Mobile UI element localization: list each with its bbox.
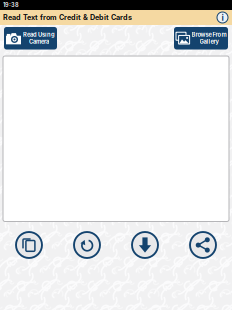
button[interactable]: Browse From [174,27,228,49]
staticText: Read Text from Credit & Debit Cards [3,13,132,22]
staticText: i [221,12,223,23]
staticText: 19:38 [3,2,19,8]
staticText: Camera [29,38,49,45]
button[interactable]: Share [184,229,222,261]
button[interactable]: Reset [68,229,106,261]
staticText: Browse From [191,31,226,38]
button[interactable]: Copy text [10,229,48,261]
button[interactable]: Download [126,229,164,261]
staticText: Gallery [199,38,218,45]
staticText: Read Using [23,31,55,38]
button[interactable]: Info [215,10,230,25]
button[interactable]: Read Using [4,27,57,49]
